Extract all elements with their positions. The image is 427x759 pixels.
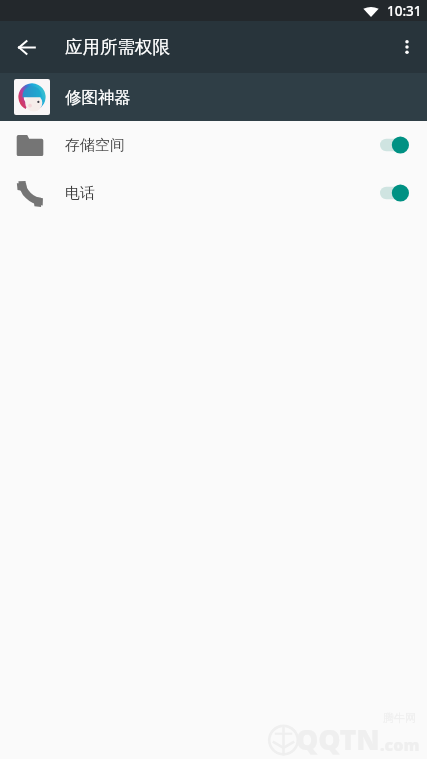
staticText: .com	[380, 734, 420, 756]
staticText: 应用所需权限	[65, 36, 170, 58]
staticText: 腾牛网	[383, 711, 416, 725]
button[interactable]: Toggle permission	[378, 132, 410, 158]
staticText: 存储空间	[65, 136, 125, 155]
button[interactable]: Toggle permission	[378, 180, 410, 206]
button[interactable]: 存储空间	[0, 121, 427, 169]
staticText: 10:31	[387, 2, 422, 20]
staticText: 电话	[65, 184, 95, 203]
button[interactable]: 电话	[0, 169, 427, 217]
button[interactable]: More options	[385, 25, 427, 69]
button[interactable]: 修图神器	[0, 73, 427, 121]
staticText: QQTN	[296, 720, 380, 758]
button[interactable]: Back	[0, 21, 52, 73]
staticText: 修图神器	[65, 87, 131, 108]
